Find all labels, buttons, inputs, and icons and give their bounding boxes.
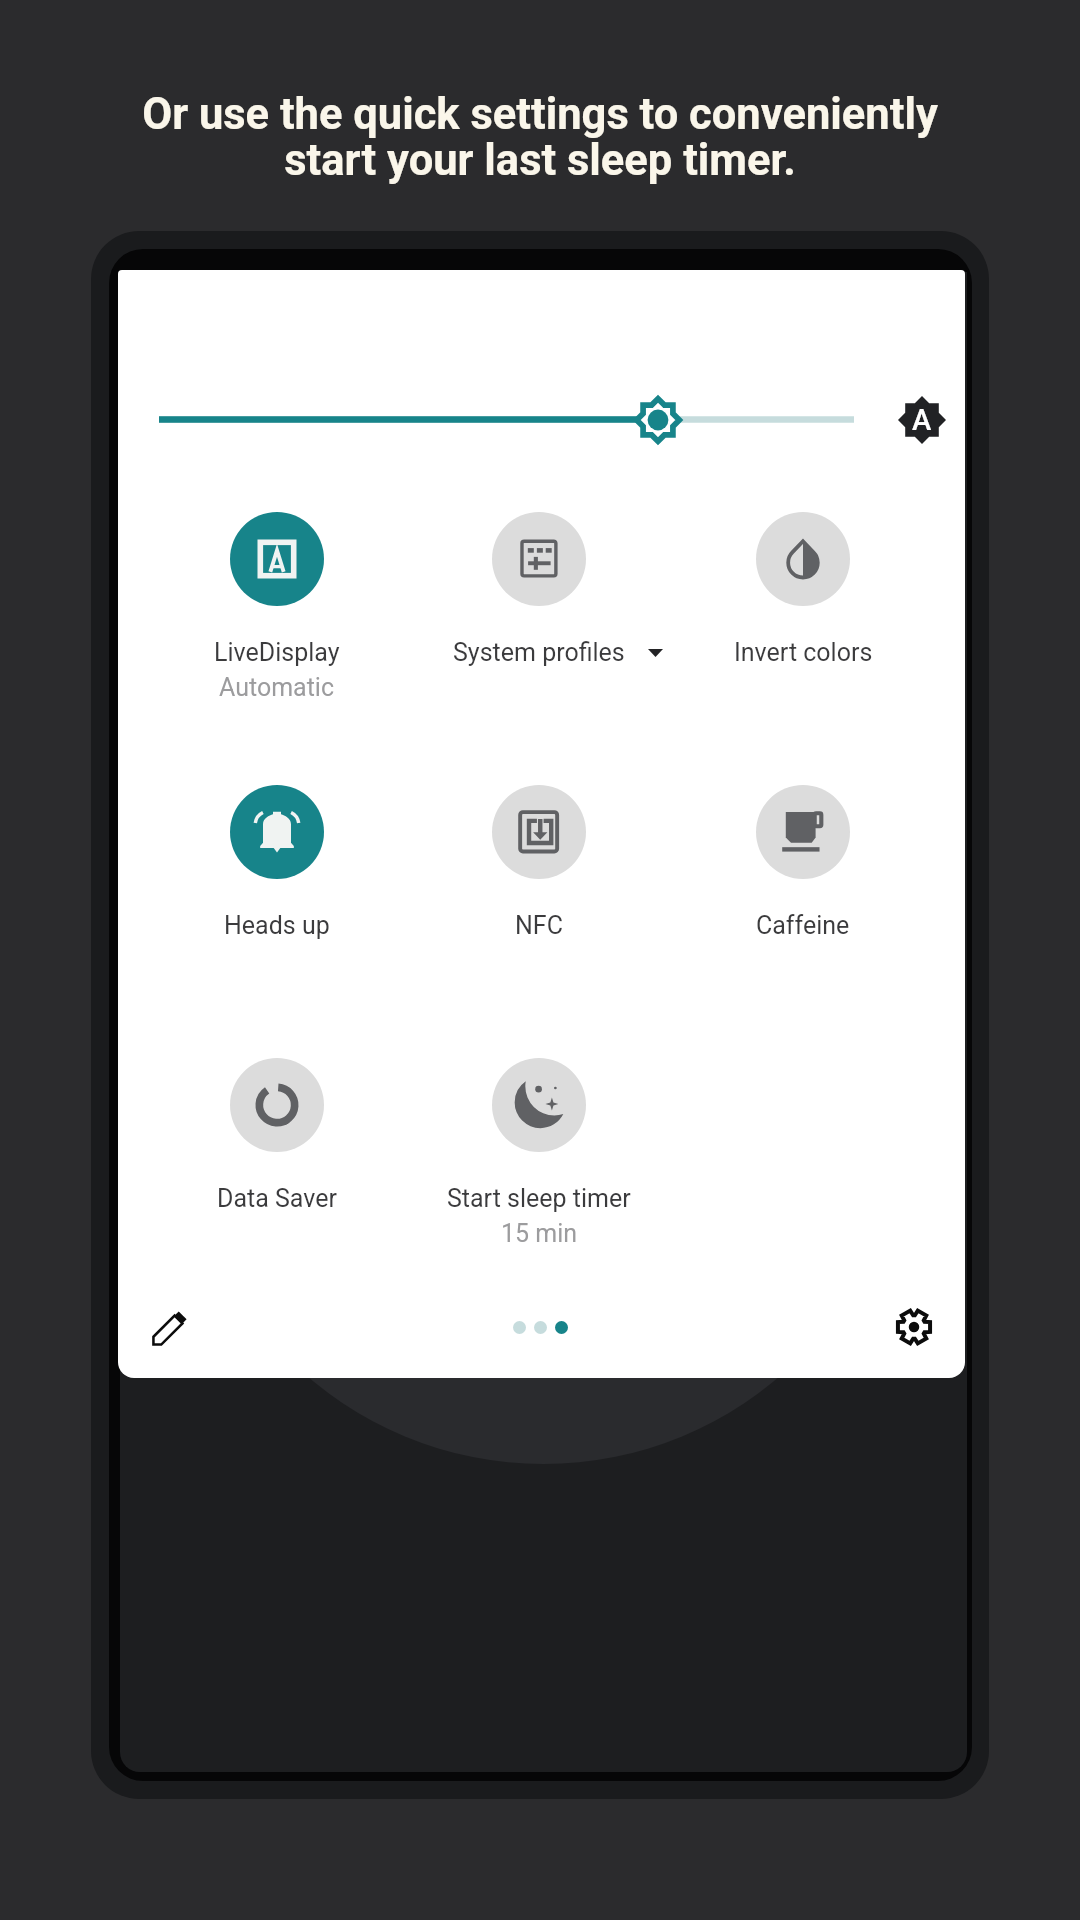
- staticText: A: [912, 403, 932, 437]
- staticText: Invert colors: [734, 638, 873, 667]
- staticText: LiveDisplay: [214, 638, 340, 667]
- button[interactable]: Settings: [878, 1291, 950, 1363]
- button[interactable]: [408, 1043, 670, 1238]
- staticText: Start sleep timer: [447, 1184, 631, 1213]
- button[interactable]: [408, 497, 670, 692]
- staticText: Heads up: [224, 911, 330, 940]
- button[interactable]: [408, 770, 670, 965]
- button[interactable]: [146, 1043, 408, 1238]
- button[interactable]: [146, 770, 408, 965]
- button[interactable]: Auto brightness: [876, 374, 965, 466]
- staticText: Caffeine: [756, 911, 850, 940]
- staticText: Data Saver: [217, 1184, 337, 1213]
- staticText: System profiles: [453, 638, 625, 667]
- button[interactable]: Edit tiles: [134, 1292, 206, 1364]
- staticText: 15 min: [501, 1219, 578, 1248]
- staticText: NFC: [515, 911, 563, 940]
- button[interactable]: [146, 497, 408, 692]
- staticText: Automatic: [219, 673, 335, 702]
- button[interactable]: [672, 497, 934, 692]
- button[interactable]: [672, 770, 934, 965]
- staticText: Or use the quick settings to convenientl…: [142, 89, 938, 185]
